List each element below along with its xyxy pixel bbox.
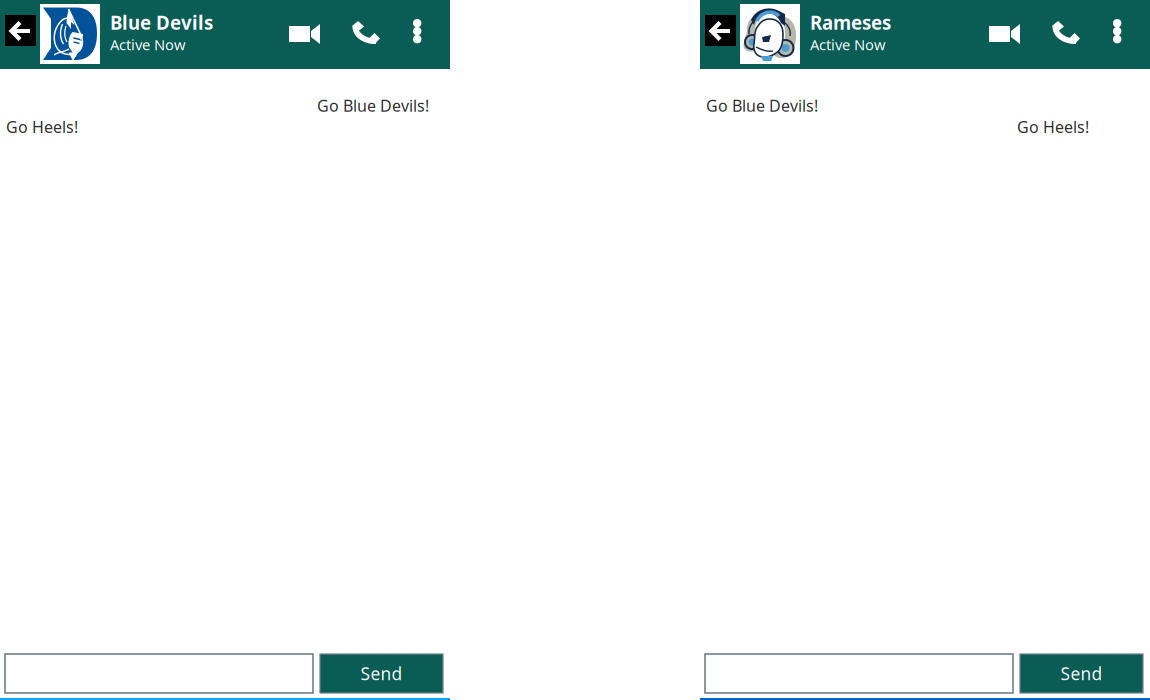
button[interactable]: Voice call: [352, 21, 380, 44]
button[interactable]: Send: [1020, 654, 1143, 693]
button[interactable]: Video call: [289, 24, 320, 44]
button[interactable]: Back: [5, 15, 36, 46]
button[interactable]: Message: [5, 654, 313, 693]
button[interactable]: Back: [705, 15, 736, 46]
staticText: Go Blue Devils!: [317, 95, 429, 116]
staticText: Active Now: [110, 35, 186, 54]
staticText: Go Heels!: [6, 116, 78, 137]
staticText: Send: [1060, 662, 1102, 685]
button[interactable]: Message: [705, 654, 1013, 693]
staticText: Blue Devils: [110, 10, 213, 35]
staticText: Send: [360, 662, 402, 685]
staticText: Go Blue Devils!: [706, 95, 818, 116]
button[interactable]: More options: [1113, 19, 1122, 44]
staticText: Rameses: [810, 10, 891, 35]
button[interactable]: Voice call: [1052, 21, 1080, 44]
button[interactable]: Send: [320, 654, 443, 693]
button[interactable]: More options: [413, 19, 422, 44]
button[interactable]: Video call: [989, 24, 1020, 44]
staticText: Go Heels!: [1017, 116, 1089, 137]
staticText: Active Now: [810, 35, 886, 54]
